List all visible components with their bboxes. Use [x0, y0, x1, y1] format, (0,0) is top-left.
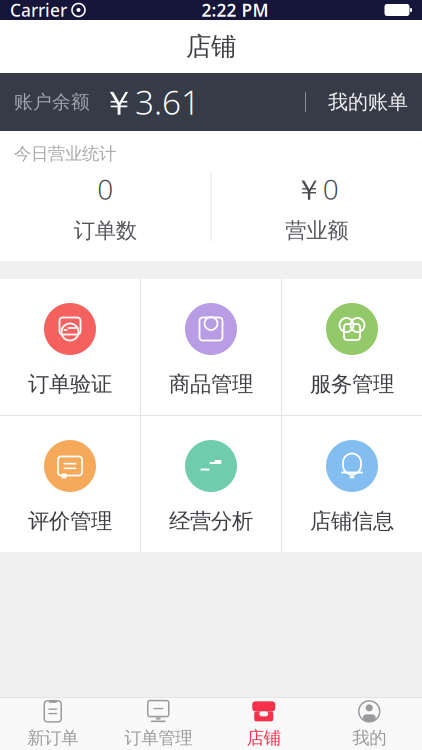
staticText: 营业额	[285, 218, 348, 244]
staticText: ￥3.61	[102, 80, 200, 124]
staticText: 订单数	[74, 217, 137, 244]
staticText: 评价管理	[28, 508, 112, 534]
staticText: 新订单	[27, 727, 78, 749]
button[interactable]: 订单验证	[0, 279, 140, 415]
button[interactable]: 店铺信息	[282, 416, 422, 552]
button[interactable]: 我的	[316, 698, 422, 750]
staticText: 2:22 PM	[201, 0, 268, 21]
staticText: 店铺信息	[310, 508, 394, 534]
staticText: 今日营业统计	[14, 143, 116, 164]
staticText: 店铺	[186, 31, 236, 62]
staticText: 店铺	[247, 727, 281, 749]
button[interactable]: 店铺	[211, 698, 316, 750]
button[interactable]: 商品管理	[141, 279, 281, 415]
button[interactable]: 服务管理	[282, 279, 422, 415]
staticText: 我的账单	[328, 90, 408, 114]
staticText: 订单验证	[28, 371, 112, 397]
button[interactable]: 经营分析	[141, 416, 281, 552]
staticText: 服务管理	[310, 371, 394, 397]
staticText: 账户余额	[14, 90, 90, 113]
button[interactable]: 评价管理	[0, 416, 140, 552]
staticText: Carrier	[10, 0, 67, 21]
staticText: 0	[97, 170, 113, 208]
staticText: ￥0	[295, 170, 339, 208]
staticText: 订单管理	[124, 727, 192, 749]
staticText: 我的	[352, 727, 386, 749]
button[interactable]: 订单管理	[105, 698, 211, 750]
staticText: 商品管理	[169, 371, 253, 397]
button[interactable]: 我的账单	[305, 76, 408, 128]
staticText: 经营分析	[169, 508, 253, 534]
button[interactable]: 新订单	[0, 698, 105, 750]
